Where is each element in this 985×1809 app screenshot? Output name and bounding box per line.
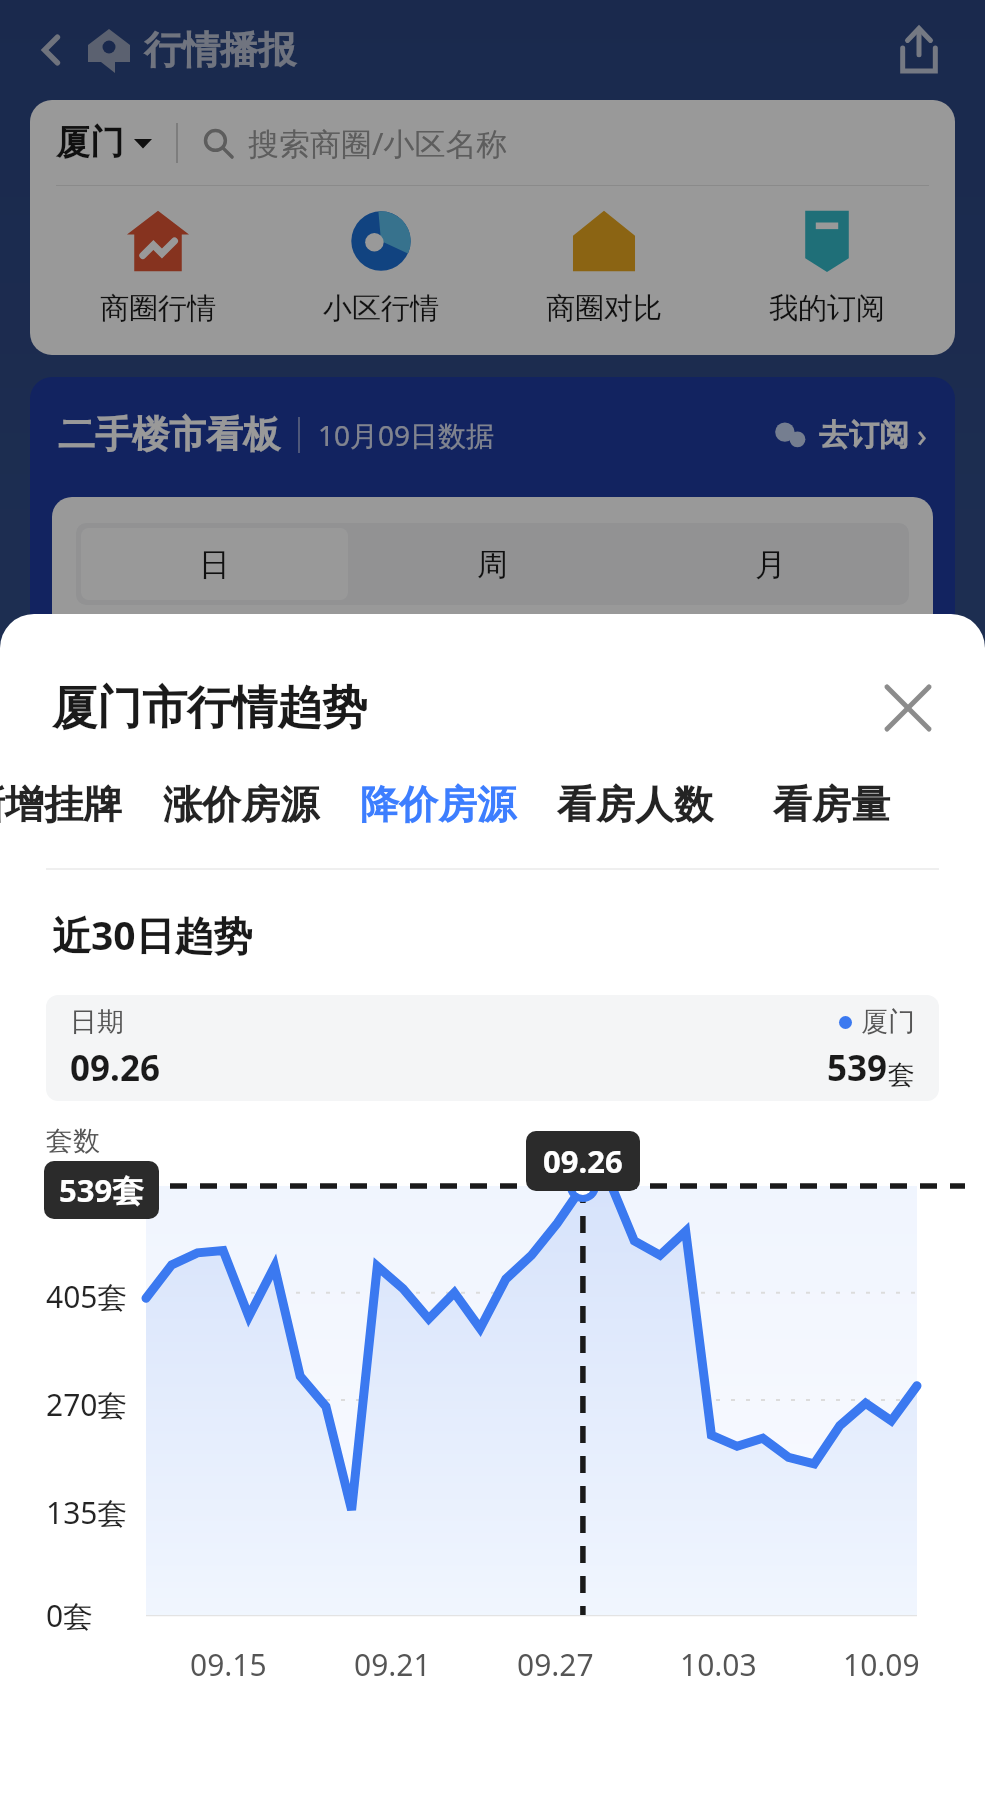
staticText: 09.27 xyxy=(517,1644,594,1685)
button[interactable]: 小区行情 xyxy=(286,208,476,327)
staticText: 商圈对比 xyxy=(546,290,662,327)
staticText: 09.21 xyxy=(354,1644,431,1685)
button[interactable]: 厦门 xyxy=(56,121,152,164)
staticText: 日期 xyxy=(70,1005,124,1039)
staticText: 二手楼市看板 xyxy=(58,411,280,458)
button[interactable]: 商圈对比 xyxy=(509,208,699,327)
staticText: 行情播报 xyxy=(144,26,296,74)
staticText: 厦门市行情趋势 xyxy=(52,680,367,737)
staticText: 10.09 xyxy=(843,1644,920,1685)
staticText: 商圈行情 xyxy=(100,290,216,327)
staticText: 10月09日数据 xyxy=(318,416,495,454)
button[interactable]: 降价房源 xyxy=(339,756,536,852)
staticText: 135套 xyxy=(46,1492,128,1533)
staticText: 新增挂牌 xyxy=(0,780,122,829)
staticText: 套 xyxy=(888,1058,915,1092)
button[interactable]: 月 xyxy=(636,528,904,600)
staticText: 涨价房源 xyxy=(163,780,319,829)
staticText: 09.26 xyxy=(543,1140,623,1182)
button[interactable]: Close xyxy=(873,673,943,743)
staticText: 厦门 xyxy=(861,1005,915,1039)
staticText: 月 xyxy=(755,545,786,584)
button[interactable]: 周 xyxy=(358,528,626,600)
button[interactable]: Share xyxy=(883,14,955,86)
button[interactable]: 搜索商圈/小区名称 xyxy=(202,122,929,164)
button[interactable]: 我的订阅 xyxy=(732,208,922,327)
staticText: 我的订阅 xyxy=(769,290,885,327)
button[interactable]: 涨价房源 xyxy=(142,756,339,852)
button[interactable]: 日 xyxy=(81,528,348,600)
staticText: 近30日趋势 xyxy=(52,908,253,961)
staticText: 搜索商圈/小区名称 xyxy=(248,122,508,164)
staticText: 去订阅 xyxy=(819,416,909,454)
staticText: 周 xyxy=(477,545,508,584)
staticText: 看房人数 xyxy=(557,780,713,829)
staticText: 套数 xyxy=(46,1124,100,1158)
button[interactable]: 看房量 xyxy=(733,756,930,852)
button[interactable]: 看房人数 xyxy=(536,756,733,852)
staticText: 小区行情 xyxy=(323,290,439,327)
staticText: 10.03 xyxy=(680,1644,757,1685)
button[interactable]: 去订阅 xyxy=(773,413,927,457)
staticText: › xyxy=(917,413,927,457)
staticText: 539套 xyxy=(59,1169,144,1211)
staticText: 日 xyxy=(199,545,230,584)
staticText: 405套 xyxy=(46,1276,128,1317)
staticText: 0套 xyxy=(46,1595,94,1636)
button[interactable]: 商圈行情 xyxy=(63,208,253,327)
button[interactable]: 新增挂牌 xyxy=(0,756,142,852)
staticText: 09.15 xyxy=(190,1644,267,1685)
staticText: 降价房源 xyxy=(360,780,516,829)
staticText: 270套 xyxy=(46,1384,128,1425)
staticText: 539 xyxy=(827,1044,888,1092)
staticText: 看房量 xyxy=(773,780,890,829)
button[interactable]: Back xyxy=(26,25,76,75)
staticText: 厦门 xyxy=(56,121,124,164)
staticText: 09.26 xyxy=(70,1044,160,1092)
